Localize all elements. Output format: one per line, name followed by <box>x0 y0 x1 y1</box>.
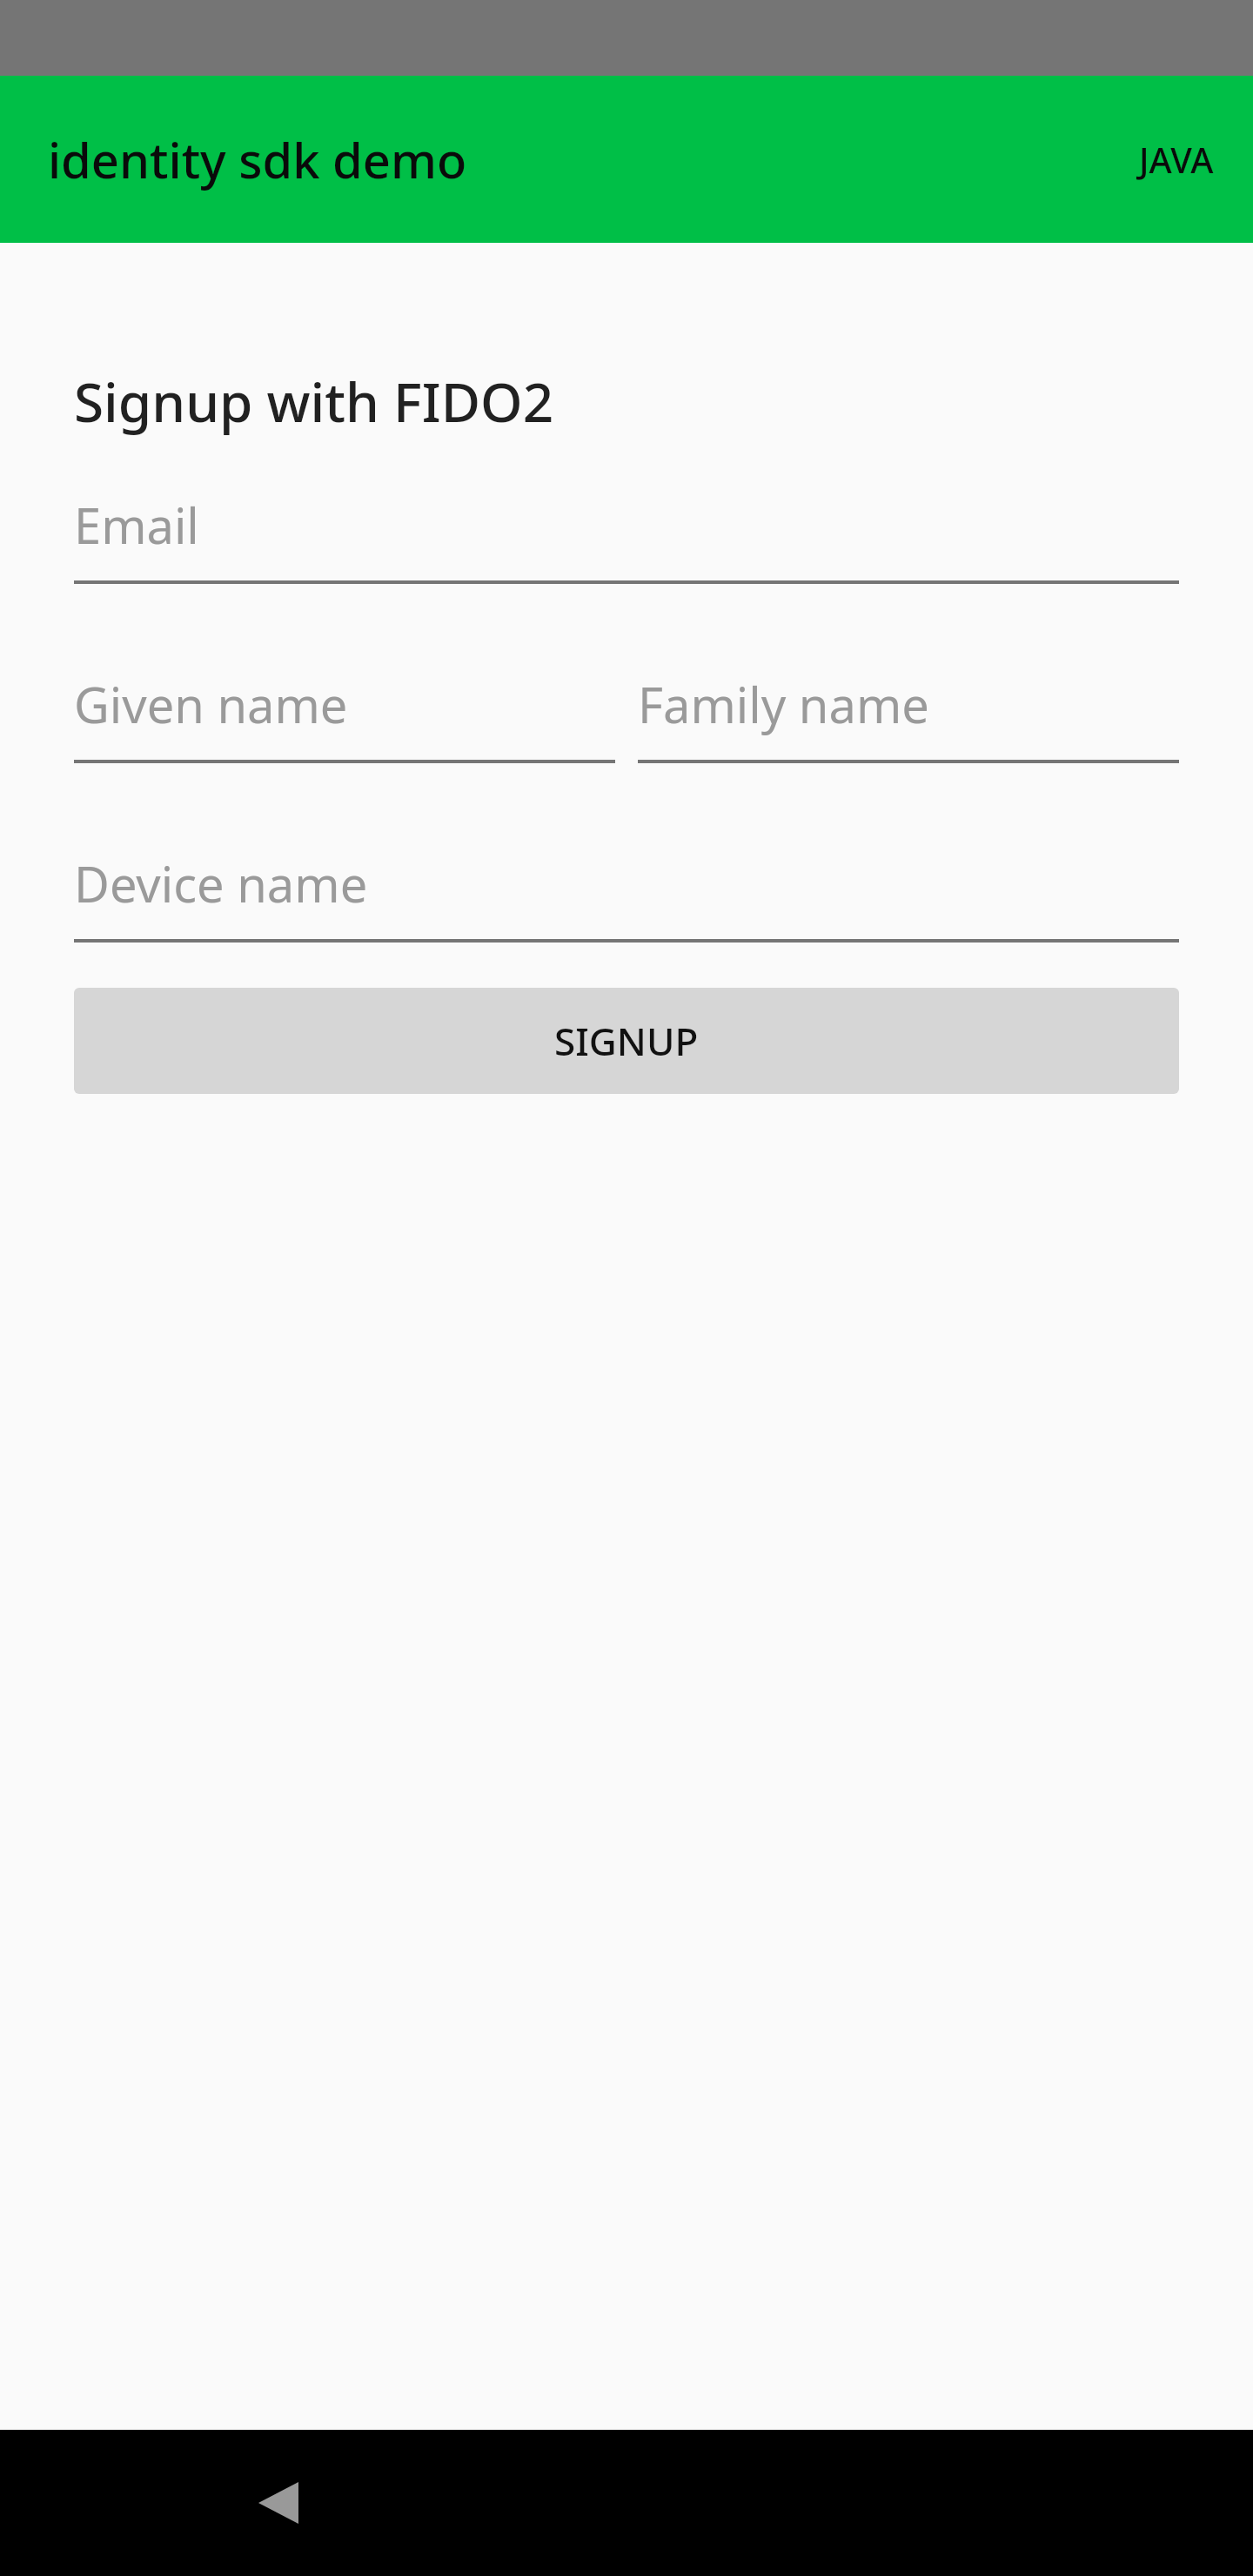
staticText: Given name <box>74 671 348 737</box>
staticText: identity sdk demo <box>48 126 467 192</box>
button[interactable]: Email <box>74 492 1179 584</box>
staticText: Family name <box>638 671 929 737</box>
button[interactable]: Family name <box>638 671 1179 763</box>
staticText: Signup with FIDO2 <box>74 365 554 438</box>
button[interactable]: Back <box>222 2446 335 2559</box>
button[interactable]: Given name <box>74 671 615 763</box>
staticText: Email <box>74 492 199 558</box>
button[interactable]: Device name <box>74 850 1179 943</box>
staticText: Device name <box>74 850 368 916</box>
button[interactable]: JAVA <box>1100 110 1253 209</box>
staticText: SIGNUP <box>554 1015 699 1067</box>
staticText: JAVA <box>1139 136 1214 183</box>
button[interactable]: SIGNUP <box>74 988 1179 1094</box>
